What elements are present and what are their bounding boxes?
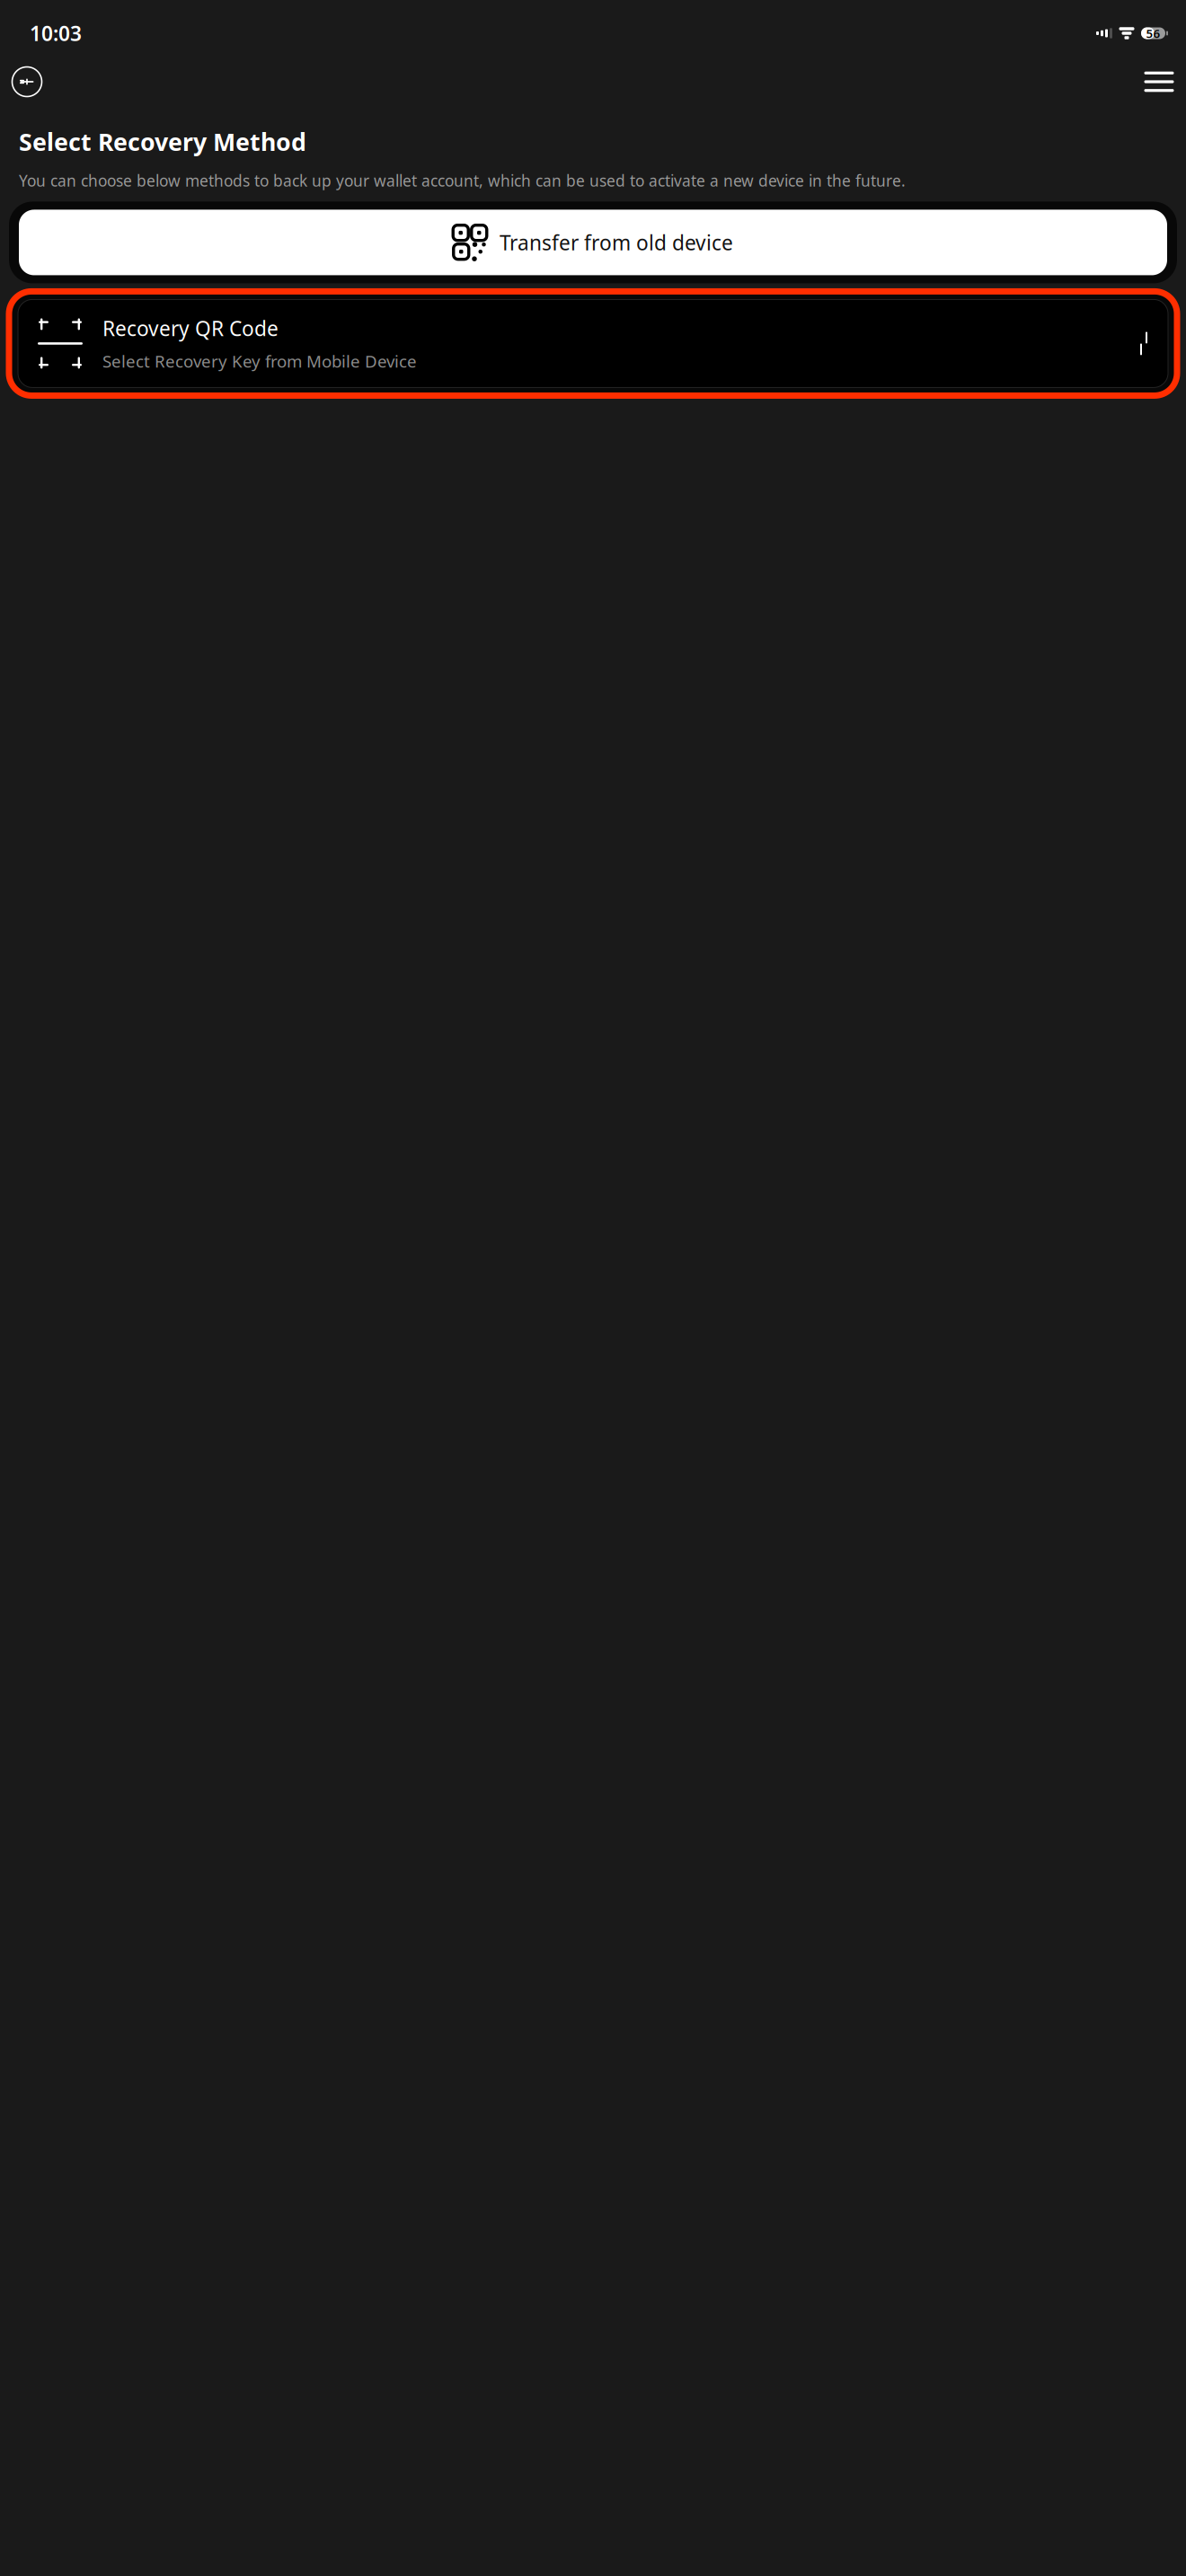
- staticText: 56: [1146, 25, 1160, 41]
- staticText: 10:03: [30, 20, 82, 47]
- button[interactable]: Menu: [1139, 62, 1179, 101]
- button[interactable]: Transfer from old device: [0, 191, 1186, 283]
- staticText: Select Recovery Method: [19, 126, 306, 158]
- staticText: Transfer from old device: [500, 229, 733, 256]
- button[interactable]: Recovery QR Code: [0, 283, 1186, 396]
- button[interactable]: Back: [7, 62, 47, 101]
- staticText: You can choose below methods to back up …: [19, 170, 906, 191]
- staticText: Recovery QR Code: [102, 315, 279, 342]
- staticText: Select Recovery Key from Mobile Device: [102, 350, 417, 372]
